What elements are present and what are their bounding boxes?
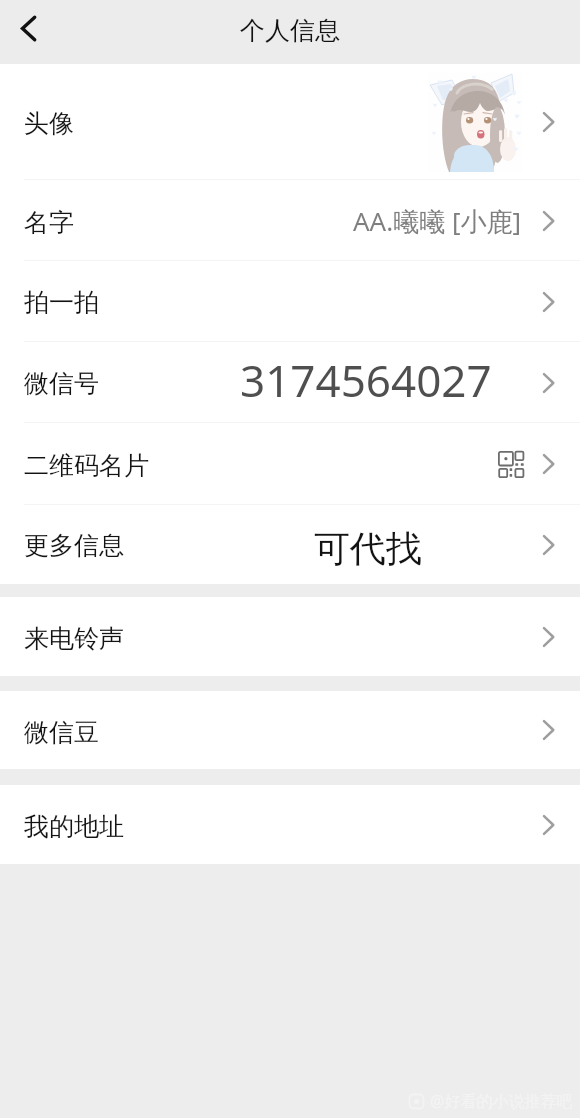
button[interactable]: 微信豆 — [0, 691, 580, 769]
staticText: 3174564027 — [240, 350, 492, 410]
staticText: 二维码名片 — [24, 450, 149, 481]
staticText: 来电铃声 — [24, 623, 124, 654]
button[interactable]: Back — [0, 4, 56, 60]
staticText: 可代找 — [314, 526, 422, 571]
staticText: 更多信息 — [24, 530, 124, 561]
button[interactable]: 来电铃声 — [0, 597, 580, 676]
staticText: 个人信息 — [240, 15, 340, 46]
button[interactable]: 微信号 — [0, 342, 580, 423]
button[interactable]: 拍一拍 — [0, 261, 580, 342]
button[interactable]: 二维码名片 — [0, 423, 580, 505]
staticText: 我的地址 — [24, 811, 124, 842]
staticText: AA.曦曦 [小鹿] — [353, 203, 522, 239]
button[interactable]: 更多信息 — [0, 505, 580, 584]
button[interactable]: 头像 — [0, 64, 580, 180]
staticText: 头像 — [24, 108, 74, 139]
staticText: 拍一拍 — [24, 287, 99, 318]
staticText: 微信号 — [24, 368, 99, 399]
button[interactable]: 我的地址 — [0, 785, 580, 864]
button[interactable]: 名字 — [0, 180, 580, 261]
staticText: 微信豆 — [24, 717, 99, 748]
staticText: 名字 — [24, 207, 74, 238]
